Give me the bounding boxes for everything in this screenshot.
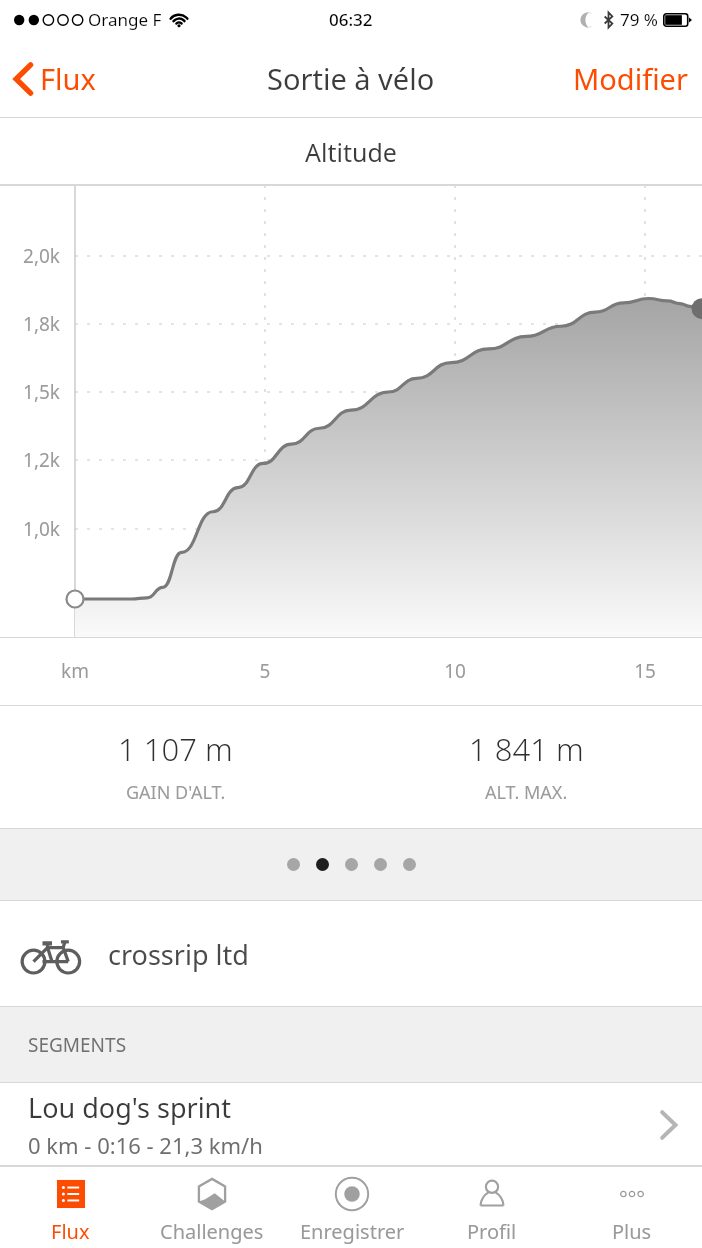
staticText: 1,0k xyxy=(0,516,60,542)
button[interactable]: Challenges xyxy=(141,1166,282,1248)
button[interactable]: Plus xyxy=(562,1166,702,1248)
staticText: Enregistrer xyxy=(300,1218,405,1245)
staticText: km xyxy=(35,658,115,684)
staticText: 5 xyxy=(225,658,305,684)
button[interactable]: crossrip ltd xyxy=(0,901,702,1007)
staticText: Plus xyxy=(612,1218,652,1245)
staticText: Challenges xyxy=(160,1218,264,1245)
staticText: 15 xyxy=(605,658,685,684)
staticText: Flux xyxy=(51,1218,90,1245)
button[interactable]: Profil xyxy=(422,1166,562,1248)
staticText: 10 xyxy=(415,658,495,684)
staticText: Profil xyxy=(467,1218,517,1245)
button[interactable]: Flux xyxy=(0,1166,141,1248)
staticText: 1,8k xyxy=(0,311,60,337)
staticText: GAIN D'ALT. xyxy=(126,780,226,805)
staticText: SEGMENTS xyxy=(28,1032,127,1058)
staticText: Flux xyxy=(40,59,96,98)
staticText: 06:32 xyxy=(329,8,373,31)
staticText: 1,2k xyxy=(0,447,60,473)
staticText: 0 km - 0:16 - 21,3 km/h xyxy=(28,1130,263,1160)
button[interactable]: Modifier xyxy=(559,49,702,108)
staticText: 1 841 m xyxy=(469,728,584,770)
staticText: 1,5k xyxy=(0,379,60,405)
staticText: 1 107 m xyxy=(118,728,233,770)
staticText: crossrip ltd xyxy=(108,936,249,973)
staticText: Altitude xyxy=(305,135,397,169)
staticText: Modifier xyxy=(573,59,688,98)
staticText: Orange F xyxy=(88,8,162,31)
staticText: ALT. MAX. xyxy=(485,780,568,805)
staticText: 79 % xyxy=(620,8,658,31)
staticText: Sortie à vélo xyxy=(267,59,435,98)
button[interactable]: Lou dog's sprint xyxy=(0,1083,702,1166)
staticText: 2,0k xyxy=(0,243,60,269)
staticText: Lou dog's sprint xyxy=(28,1089,232,1126)
button[interactable]: Flux xyxy=(0,51,106,106)
button[interactable]: Enregistrer xyxy=(282,1166,422,1248)
